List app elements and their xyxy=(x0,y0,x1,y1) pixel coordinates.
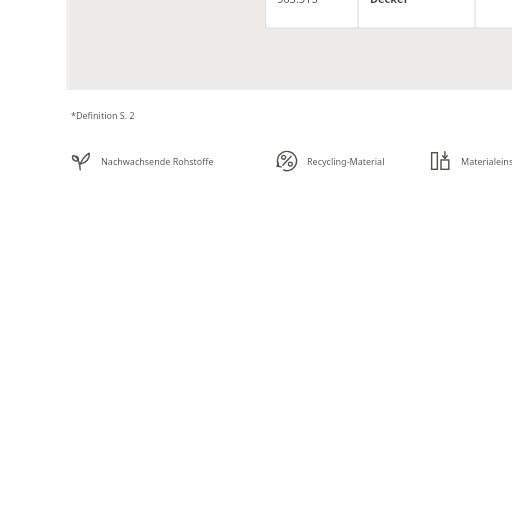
staticText: *Definition S. 2 xyxy=(71,109,135,121)
button[interactable]: Recycling-Material xyxy=(274,145,385,177)
button[interactable]: Materialeinsparung xyxy=(428,145,512,177)
staticText: Recycling-Material xyxy=(307,155,385,167)
staticText: Deckel xyxy=(370,0,407,6)
staticText: Materialeinsparung xyxy=(461,155,512,167)
staticText: Nachwachsende Rohstoffe xyxy=(101,155,214,167)
staticText: 563.515 xyxy=(277,0,318,6)
button[interactable]: Nachwachsende Rohstoffe xyxy=(68,145,214,177)
